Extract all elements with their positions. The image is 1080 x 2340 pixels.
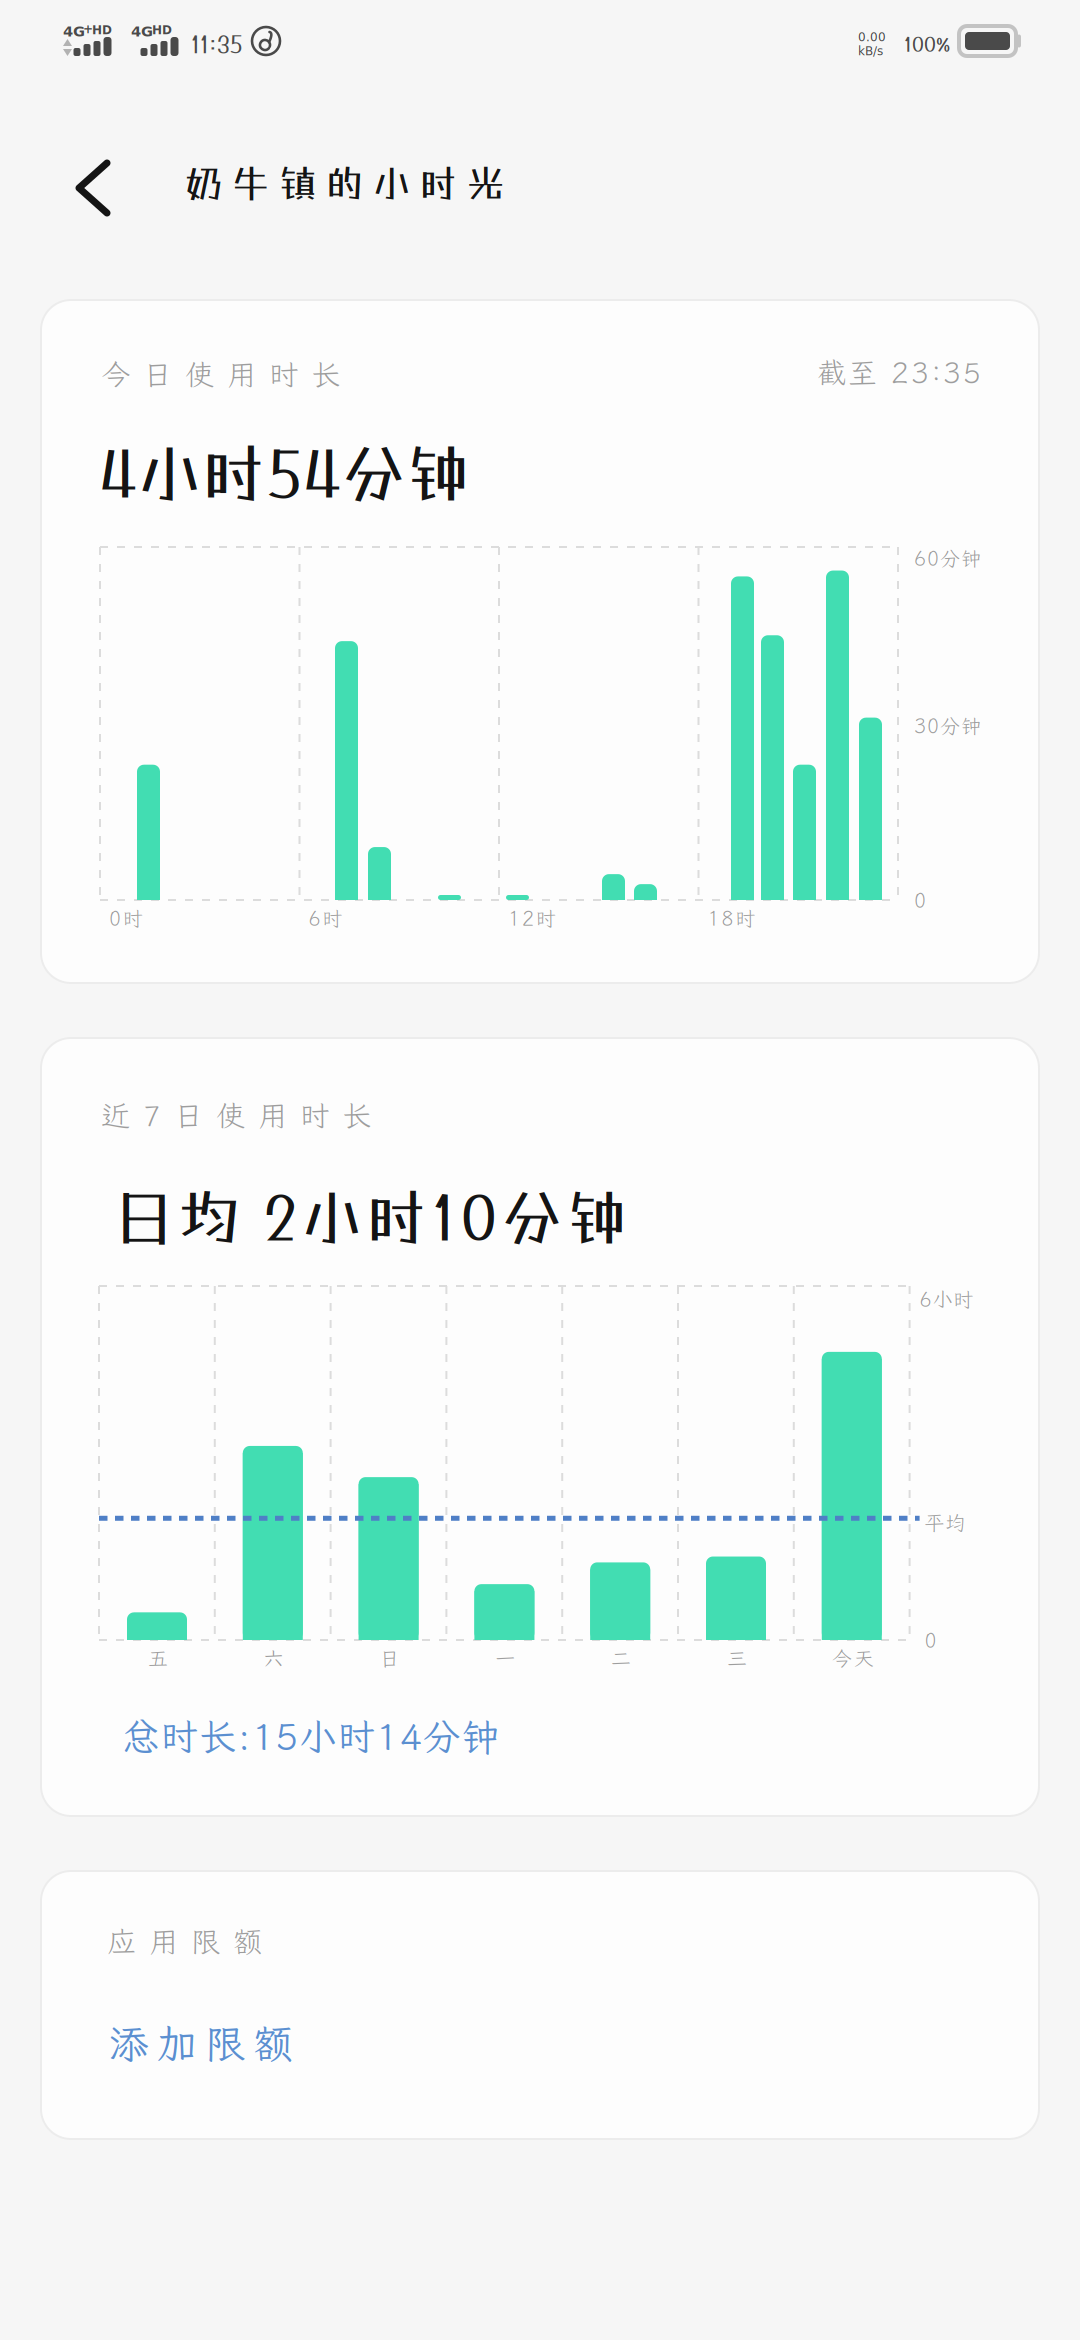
staticText: 今天 [832,1645,874,1671]
staticText: 平均 [925,1509,966,1536]
staticText: 11:35 [191,31,242,58]
staticText: 0.00 [858,30,886,44]
staticText: 总时长:15小时14分钟 [122,1711,498,1761]
staticText: 日 [379,1645,399,1671]
staticText: + [83,22,93,36]
staticText: 应用限额 [107,1922,262,1961]
staticText: 二 [611,1645,631,1671]
staticText: 0 [914,887,926,913]
staticText: 12时 [508,905,556,931]
staticText: 4小时54分钟 [99,436,470,510]
staticText: 60分钟 [914,545,981,571]
button[interactable]: 返回 [57,146,129,230]
staticText: 一 [495,1645,515,1671]
staticText: kB/s [858,44,883,58]
staticText: 奶牛镇的小时光 [185,161,504,205]
staticText: 六 [264,1645,284,1671]
staticText: 近7日使用时长 [101,1096,371,1135]
staticText: 4G [131,23,153,40]
staticText: HD [92,23,112,37]
staticText: 30分钟 [914,712,981,739]
staticText: HD [152,23,172,37]
button[interactable]: 总时长:15小时14分钟 [122,1708,592,1764]
staticText: 截至 23:35 [817,353,981,392]
staticText: 4G [63,23,85,40]
staticText: 添加限额 [109,2017,293,2069]
staticText: 五 [148,1645,168,1671]
staticText: 三 [727,1645,747,1671]
staticText: 100% [904,32,950,56]
staticText: 6时 [308,905,342,931]
staticText: 18时 [707,905,755,931]
staticText: 0 [925,1627,937,1653]
staticText: 今日使用时长 [101,355,340,394]
staticText: 6小时 [920,1286,974,1312]
button[interactable]: 添加限额 [109,2013,369,2073]
staticText: 日均 2小时10分钟 [114,1182,627,1252]
staticText: 0时 [109,905,143,931]
